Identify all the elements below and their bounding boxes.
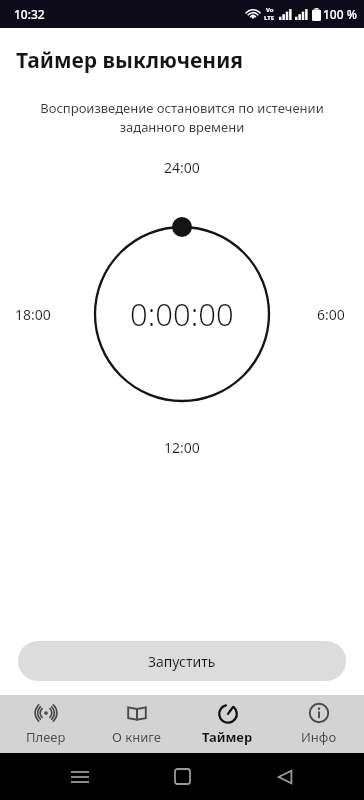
staticText: Инфо [301,728,337,746]
button[interactable]: Запустить [18,641,346,681]
staticText: 6:00 [317,305,345,324]
staticText: Воспроизведение остановится по истечении… [14,99,350,136]
staticText: 10:32 [14,6,45,22]
staticText: 0:00:00 [130,293,234,335]
staticText: 18:00 [15,305,51,324]
staticText: Таймер [202,728,253,746]
staticText: О книге [112,728,161,746]
button[interactable]: Инфо [273,695,364,753]
staticText: Vo [266,6,274,14]
staticText: 12:00 [164,438,200,457]
staticText: 24:00 [164,158,200,177]
button[interactable]: Home [159,753,206,800]
staticText: 100 % [323,6,357,22]
staticText: Таймер выключения [16,46,243,75]
button[interactable]: Recent apps [56,753,103,800]
staticText: Запустить [148,652,216,671]
button[interactable]: Таймер [182,695,273,753]
button[interactable]: Плеер [0,695,91,753]
staticText: Плеер [26,728,66,746]
button[interactable]: Back [261,753,308,800]
button[interactable]: О книге [91,695,182,753]
button[interactable]: Установить время таймера [87,219,277,409]
staticText: LTE [264,14,275,22]
